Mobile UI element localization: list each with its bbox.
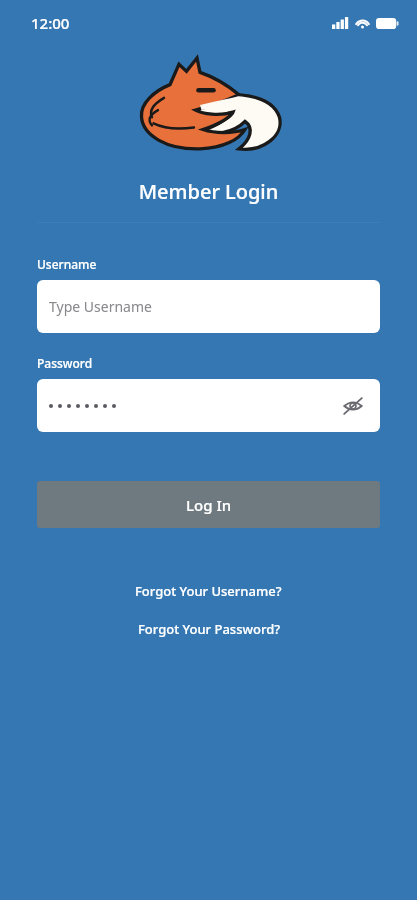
staticText: Log In — [186, 495, 232, 515]
staticText: Member Login — [0, 178, 417, 205]
button[interactable]: Log In — [37, 481, 380, 528]
staticText: Password — [37, 355, 417, 371]
staticText: Username — [37, 256, 417, 272]
button[interactable]: Type Username — [37, 280, 380, 333]
staticText: 12:00 — [31, 13, 70, 33]
button[interactable]: Show password — [37, 379, 380, 432]
button[interactable]: Forgot Your Username? — [125, 580, 292, 602]
staticText: Forgot Your Username? — [135, 582, 282, 600]
button[interactable]: Forgot Your Password? — [128, 618, 290, 640]
button[interactable]: Show password — [340, 393, 366, 419]
staticText: Forgot Your Password? — [138, 620, 280, 638]
staticText: Type Username — [49, 297, 152, 316]
